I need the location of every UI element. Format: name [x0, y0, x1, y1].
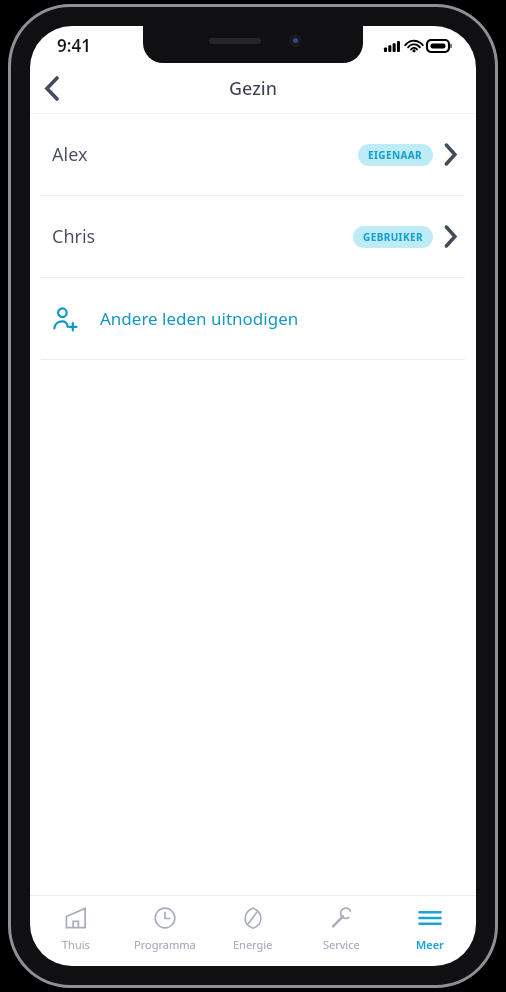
staticText: EIGENAAR [368, 148, 423, 162]
button[interactable]: Chris [30, 196, 476, 277]
button[interactable]: Thuis [34, 896, 118, 952]
button[interactable]: Andere leden uitnodigen [30, 278, 476, 359]
button[interactable]: Energie [211, 896, 295, 952]
staticText: Meer [416, 937, 444, 952]
button[interactable]: Meer [388, 896, 472, 952]
staticText: Thuis [62, 937, 90, 952]
staticText: Gezin [229, 76, 277, 101]
staticText: Energie [233, 937, 273, 952]
button[interactable]: Alex [30, 114, 476, 195]
staticText: Service [323, 937, 360, 952]
staticText: Alex [52, 142, 88, 167]
button[interactable]: Service [299, 896, 383, 952]
staticText: Chris [52, 224, 96, 249]
staticText: Programma [134, 937, 196, 952]
button[interactable]: Back [30, 64, 78, 112]
staticText: 9:41 [57, 34, 91, 57]
button[interactable]: Programma [123, 896, 207, 952]
staticText: GEBRUIKER [363, 230, 423, 244]
staticText: Andere leden uitnodigen [100, 307, 299, 330]
